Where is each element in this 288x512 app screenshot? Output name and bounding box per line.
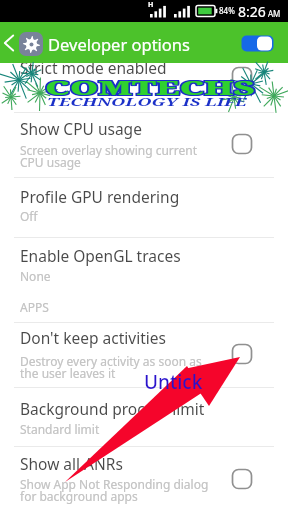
button[interactable]: Checkbox, unchecked — [231, 66, 255, 90]
staticText: COMTECHS — [45, 74, 255, 100]
staticText: None — [20, 268, 51, 284]
staticText: Enable OpenGL traces — [20, 245, 181, 266]
staticText: Background process limit — [20, 398, 205, 419]
button[interactable] — [0, 447, 288, 511]
button[interactable]: Checkbox, unchecked — [231, 343, 255, 367]
staticText: TECHNOLOGY IS LIFE — [47, 95, 247, 109]
staticText: COMTECHS — [43, 74, 253, 100]
staticText: APPS — [20, 299, 49, 315]
staticText: H — [148, 0, 154, 10]
staticText: Off — [20, 208, 38, 224]
button[interactable] — [0, 50, 288, 112]
staticText: Strict mode enabled — [20, 57, 167, 78]
staticText: Untick — [144, 369, 203, 395]
button[interactable] — [0, 388, 288, 446]
button[interactable]: Navigate up — [0, 30, 18, 56]
staticText: COMTECHS — [43, 75, 253, 101]
staticText: 8:26 — [238, 2, 266, 21]
button[interactable] — [0, 113, 288, 177]
staticText: Standard limit — [20, 421, 100, 437]
staticText: COMTECHS — [43, 76, 253, 102]
button[interactable] — [0, 178, 288, 237]
staticText: Profile GPU rendering — [20, 186, 180, 207]
staticText: 84% — [219, 5, 235, 16]
staticText: COMTECHS — [47, 76, 257, 102]
staticText: Show CPU usage — [20, 118, 142, 139]
button[interactable]: Checkbox, unchecked — [231, 133, 255, 157]
staticText: Show App Not Responding dialog for backg… — [20, 476, 209, 504]
button[interactable] — [0, 323, 288, 387]
staticText: Destroy every activity as soon as the us… — [20, 353, 202, 381]
staticText: COMTECHS — [45, 75, 255, 101]
staticText: COMTECHS — [47, 75, 257, 101]
staticText: Don't keep activities — [20, 327, 166, 348]
staticText: Show all ANRs — [20, 453, 123, 474]
staticText: COMTECHS — [45, 76, 255, 102]
staticText: Developer options — [48, 33, 190, 55]
button[interactable]: Checkbox, unchecked — [231, 468, 255, 492]
staticText: COMTECHS — [47, 74, 257, 100]
staticText: Screen overlay showing current CPU usage — [20, 142, 198, 170]
button[interactable]: Toggle developer options — [238, 30, 280, 54]
button[interactable] — [0, 238, 288, 294]
staticText: AM — [268, 8, 281, 19]
